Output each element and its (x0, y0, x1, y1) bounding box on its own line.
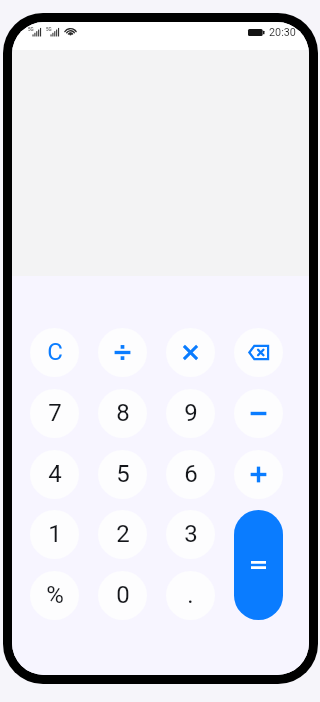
button[interactable]: Subtract (234, 389, 283, 438)
button[interactable]: Backspace (234, 328, 283, 377)
button[interactable]: 4 (30, 450, 79, 499)
staticText: 2 (116, 520, 130, 548)
button[interactable]: 3 (166, 510, 215, 559)
staticText: 20:30 (269, 26, 296, 39)
button[interactable]: 7 (30, 389, 79, 438)
button[interactable]: Multiply (166, 328, 215, 377)
staticText: 1 (48, 520, 62, 548)
button[interactable]: 1 (30, 510, 79, 559)
staticText: 0 (116, 581, 130, 609)
button[interactable]: 8 (98, 389, 147, 438)
staticText: 8 (116, 399, 130, 427)
button[interactable]: . (166, 571, 215, 620)
staticText: 9 (184, 399, 198, 427)
staticText: C (47, 338, 63, 366)
staticText: 4 (48, 460, 62, 488)
staticText: % (46, 581, 64, 609)
staticText: 5G (28, 27, 34, 32)
button[interactable]: Equals (234, 510, 283, 620)
button[interactable]: 0 (98, 571, 147, 620)
button[interactable]: Divide (98, 328, 147, 377)
button[interactable]: % (30, 571, 79, 620)
button[interactable]: C (30, 328, 79, 377)
button[interactable]: 6 (166, 450, 215, 499)
button[interactable]: 9 (166, 389, 215, 438)
staticText: 5 (116, 460, 130, 488)
button[interactable]: 2 (98, 510, 147, 559)
staticText: 3 (184, 520, 198, 548)
button[interactable]: 5 (98, 450, 147, 499)
button[interactable]: Add (234, 450, 283, 499)
staticText: . (187, 581, 194, 609)
staticText: 5G (46, 27, 52, 32)
staticText: 6 (184, 460, 198, 488)
staticText: 7 (48, 399, 62, 427)
